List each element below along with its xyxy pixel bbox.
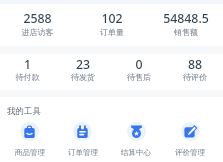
- staticText: 待发货: [55, 72, 111, 82]
- staticText: 进店访客: [0, 27, 75, 37]
- button[interactable]: 订单管理: [56, 122, 109, 157]
- staticText: 待付款: [0, 72, 55, 82]
- staticText: 待售后: [111, 72, 167, 82]
- staticText: 23: [55, 56, 111, 73]
- button[interactable]: 2588: [0, 4, 75, 46]
- staticText: 商品管理: [15, 148, 45, 157]
- staticText: 0: [111, 56, 167, 73]
- button[interactable]: 0: [111, 54, 167, 90]
- staticText: 102: [75, 10, 149, 27]
- staticText: 结算中心: [121, 148, 151, 157]
- staticText: 1: [0, 56, 55, 73]
- staticText: 订单管理: [68, 148, 98, 157]
- staticText: 我的工具: [7, 106, 41, 117]
- button[interactable]: 23: [55, 54, 111, 90]
- button[interactable]: 88: [167, 54, 223, 90]
- staticText: 订单量: [75, 27, 149, 37]
- staticText: 54848.5: [149, 10, 223, 27]
- button[interactable]: 1: [0, 54, 55, 90]
- button[interactable]: 结算中心: [109, 122, 163, 157]
- staticText: 评价管理: [175, 148, 205, 157]
- button[interactable]: 商品管理: [3, 122, 56, 157]
- button[interactable]: 102: [75, 4, 149, 46]
- button[interactable]: 54848.5: [149, 4, 223, 46]
- staticText: 2588: [0, 10, 75, 27]
- staticText: 销售额: [149, 27, 223, 37]
- button[interactable]: 评价管理: [163, 122, 217, 157]
- staticText: 待评价: [167, 72, 223, 82]
- staticText: 88: [167, 56, 223, 73]
